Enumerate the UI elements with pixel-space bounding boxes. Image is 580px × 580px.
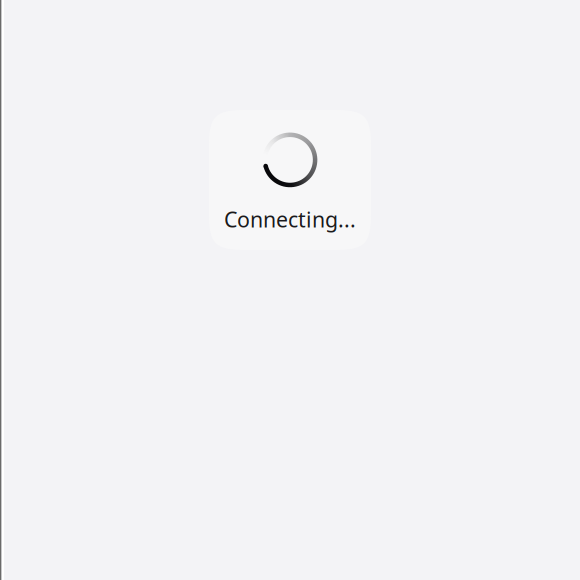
staticText: Connecting... <box>224 205 356 233</box>
